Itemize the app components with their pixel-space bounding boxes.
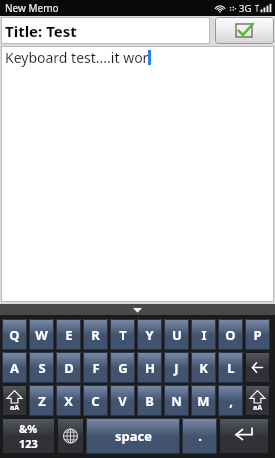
button[interactable]: Save memo <box>215 17 274 44</box>
staticText: F <box>92 359 100 377</box>
button[interactable]: Z <box>29 385 54 416</box>
staticText: N <box>171 392 182 410</box>
button[interactable]: Y <box>137 319 162 350</box>
staticText: Y <box>145 326 154 344</box>
button[interactable]: U <box>164 319 189 350</box>
button[interactable]: W <box>29 319 54 350</box>
button[interactable]: I <box>191 319 216 350</box>
button[interactable]: K <box>191 352 216 383</box>
button[interactable]: C <box>83 385 108 416</box>
staticText: S <box>38 359 46 377</box>
staticText: R <box>91 326 100 344</box>
button[interactable]: O <box>218 319 243 350</box>
button[interactable]: X <box>56 385 81 416</box>
staticText: A <box>10 359 19 377</box>
button[interactable]: T <box>110 319 135 350</box>
button[interactable]: Backspace <box>245 352 270 383</box>
button[interactable]: G <box>110 352 135 383</box>
button[interactable]: Enter <box>219 418 269 454</box>
staticText: I <box>201 326 207 344</box>
staticText: 3G <box>239 2 252 15</box>
staticText: aA <box>10 403 20 413</box>
button[interactable]: A <box>2 352 27 383</box>
button[interactable]: . <box>182 418 217 454</box>
button[interactable]: B <box>137 385 162 416</box>
button[interactable]: J <box>164 352 189 383</box>
button[interactable]: , <box>218 385 243 416</box>
button[interactable]: Keyboard test....it wor <box>1 46 274 302</box>
staticText: Z <box>38 392 46 410</box>
button[interactable]: V <box>110 385 135 416</box>
staticText: K <box>199 359 208 377</box>
button[interactable]: M <box>191 385 216 416</box>
staticText: C <box>91 392 100 410</box>
staticText: O <box>225 326 236 344</box>
staticText: Keyboard test....it wor <box>5 48 149 67</box>
staticText: . <box>198 427 202 445</box>
staticText: Title: Test <box>5 21 77 41</box>
staticText: M <box>197 392 210 410</box>
button[interactable]: F <box>83 352 108 383</box>
staticText: 123 <box>19 436 38 451</box>
staticText: L <box>227 359 235 377</box>
staticText: V <box>118 392 127 410</box>
staticText: X <box>64 392 73 410</box>
staticText: &% <box>19 421 38 436</box>
button[interactable]: Shift <box>2 385 27 416</box>
button[interactable]: Change language <box>57 418 84 454</box>
staticText: J <box>174 359 179 377</box>
button[interactable]: Title: Test <box>1 17 210 44</box>
staticText: P <box>253 326 262 344</box>
button[interactable]: space <box>86 418 180 454</box>
staticText: E <box>65 326 73 344</box>
button[interactable]: Shift <box>245 385 270 416</box>
button[interactable]: L <box>218 352 243 383</box>
staticText: W <box>35 326 48 344</box>
staticText: space <box>115 427 152 445</box>
button[interactable]: E <box>56 319 81 350</box>
staticText: B <box>145 392 154 410</box>
button[interactable]: D <box>56 352 81 383</box>
button[interactable]: N <box>164 385 189 416</box>
button[interactable]: Q <box>2 319 27 350</box>
staticText: U <box>172 326 182 344</box>
button[interactable]: H <box>137 352 162 383</box>
button[interactable]: R <box>83 319 108 350</box>
staticText: Q <box>9 326 20 344</box>
staticText: G <box>118 359 128 377</box>
staticText: D <box>64 359 74 377</box>
staticText: aA <box>253 403 263 413</box>
button[interactable]: P <box>245 319 270 350</box>
button[interactable]: &% <box>2 418 55 454</box>
staticText: H <box>145 359 155 377</box>
staticText: New Memo <box>5 1 59 15</box>
staticText: T <box>119 326 127 344</box>
staticText: , <box>229 392 233 410</box>
button[interactable]: S <box>29 352 54 383</box>
